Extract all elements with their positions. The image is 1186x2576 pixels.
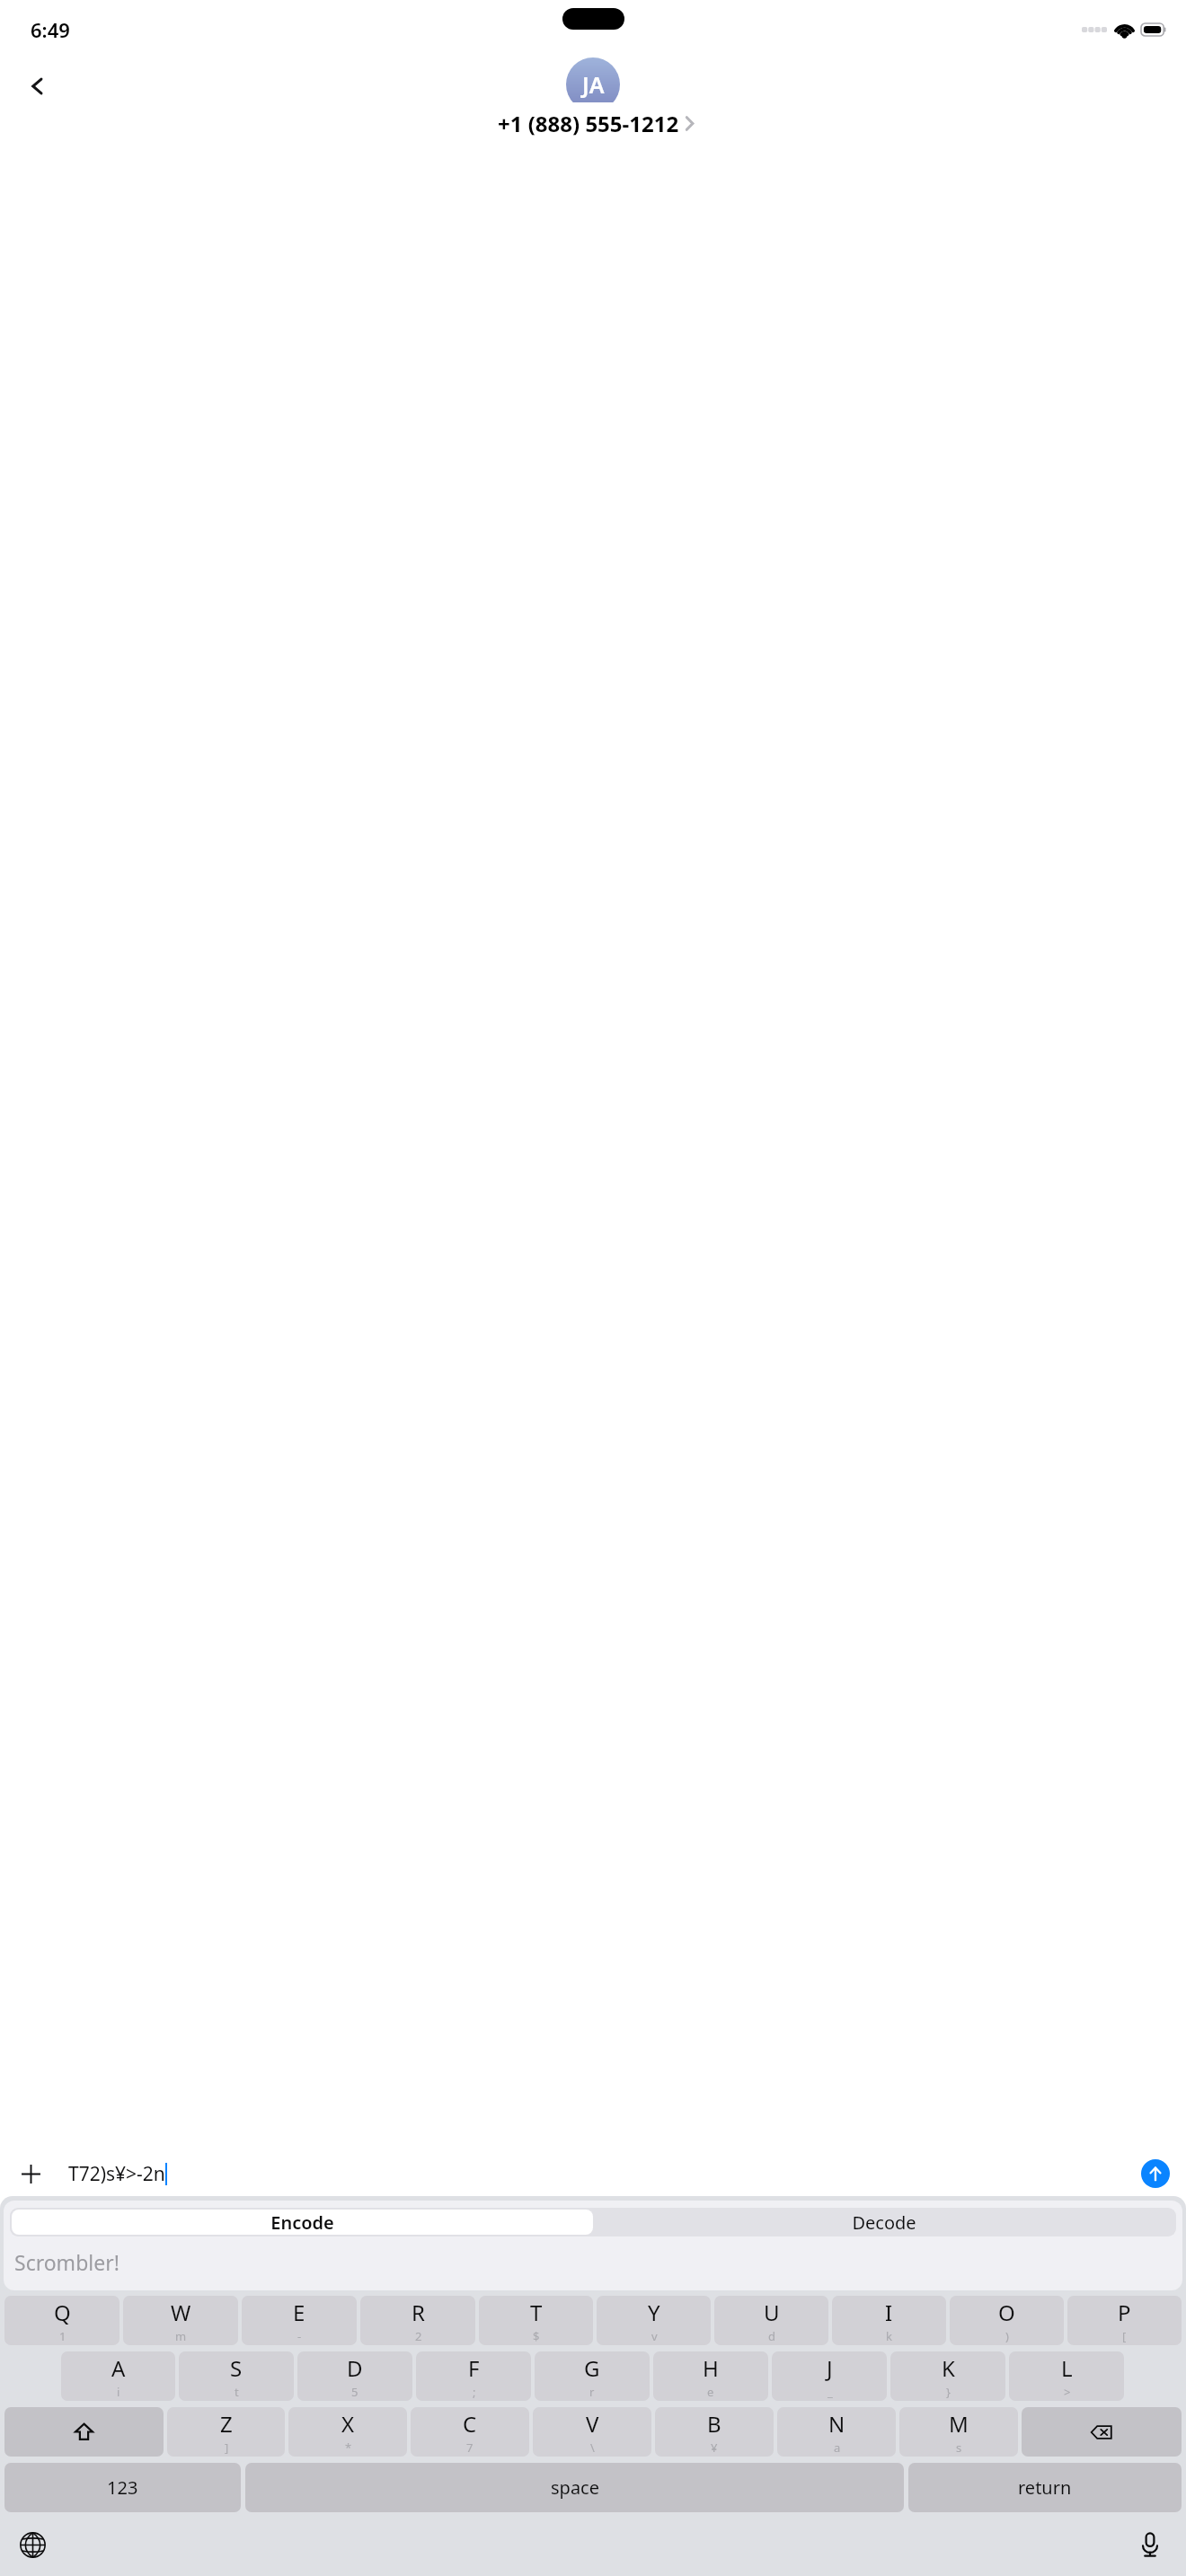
staticText: k bbox=[886, 2328, 892, 2344]
staticText: 6:49 bbox=[31, 16, 70, 43]
button[interactable]: Add attachment bbox=[13, 2156, 49, 2192]
staticText: M bbox=[949, 2409, 969, 2439]
button[interactable]: Back bbox=[16, 65, 59, 108]
button[interactable]: Dictation bbox=[1130, 2525, 1170, 2564]
staticText: Scrombler! bbox=[14, 2248, 119, 2276]
staticText: F bbox=[468, 2353, 480, 2383]
button[interactable]: space bbox=[245, 2463, 904, 2512]
button[interactable]: M bbox=[899, 2407, 1018, 2457]
staticText: ¥ bbox=[711, 2439, 718, 2456]
button[interactable]: R bbox=[360, 2296, 475, 2345]
button[interactable]: P bbox=[1067, 2296, 1182, 2345]
button[interactable]: Z bbox=[167, 2407, 285, 2457]
button[interactable]: O bbox=[950, 2296, 1064, 2345]
button[interactable]: +1 (888) 555-1212 bbox=[478, 102, 708, 146]
staticText: 1 bbox=[59, 2328, 66, 2344]
button[interactable]: Contact avatar bbox=[566, 57, 620, 111]
staticText: Y bbox=[648, 2298, 660, 2327]
staticText: a bbox=[834, 2439, 841, 2456]
button[interactable]: A bbox=[61, 2351, 175, 2401]
staticText: C bbox=[463, 2409, 477, 2439]
staticText: d bbox=[768, 2328, 775, 2344]
staticText: r bbox=[589, 2384, 595, 2400]
staticText: G bbox=[584, 2353, 600, 2383]
staticText: R bbox=[412, 2298, 425, 2327]
staticText: O bbox=[998, 2298, 1015, 2327]
staticText: * bbox=[345, 2439, 352, 2456]
button[interactable]: T bbox=[479, 2296, 593, 2345]
staticText: v bbox=[651, 2328, 658, 2344]
button[interactable]: L bbox=[1009, 2351, 1124, 2401]
staticText: T bbox=[530, 2298, 543, 2327]
staticText: W bbox=[171, 2298, 191, 2327]
button[interactable]: U bbox=[714, 2296, 828, 2345]
button[interactable]: 123 bbox=[4, 2463, 241, 2512]
staticText: ] bbox=[225, 2439, 229, 2456]
staticText: T72)s¥>-2n bbox=[68, 2161, 165, 2187]
staticText: 7 bbox=[466, 2439, 474, 2456]
button[interactable]: I bbox=[832, 2296, 946, 2345]
staticText: Z bbox=[220, 2409, 233, 2439]
staticText: ) bbox=[1005, 2328, 1009, 2344]
button[interactable]: X bbox=[288, 2407, 407, 2457]
staticText: 2 bbox=[415, 2328, 422, 2344]
button[interactable]: K bbox=[890, 2351, 1005, 2401]
staticText: Decode bbox=[852, 2210, 916, 2235]
staticText: m bbox=[175, 2328, 187, 2344]
staticText: N bbox=[828, 2409, 845, 2439]
staticText: $ bbox=[533, 2328, 540, 2344]
staticText: L bbox=[1061, 2353, 1073, 2383]
staticText: } bbox=[946, 2384, 951, 2400]
staticText: B bbox=[707, 2409, 721, 2439]
staticText: 5 bbox=[351, 2384, 358, 2400]
button[interactable]: C bbox=[411, 2407, 529, 2457]
staticText: P bbox=[1118, 2298, 1131, 2327]
staticText: _ bbox=[828, 2384, 833, 2400]
button[interactable]: F bbox=[416, 2351, 531, 2401]
button[interactable]: E bbox=[242, 2296, 357, 2345]
staticText: Encode bbox=[270, 2210, 334, 2235]
staticText: A bbox=[111, 2353, 126, 2383]
staticText: i bbox=[117, 2384, 120, 2400]
staticText: e bbox=[707, 2384, 714, 2400]
button[interactable]: return bbox=[908, 2463, 1182, 2512]
button[interactable]: V bbox=[533, 2407, 651, 2457]
button[interactable]: Decode bbox=[593, 2210, 1174, 2235]
staticText: space bbox=[551, 2475, 599, 2500]
staticText: JA bbox=[582, 69, 605, 100]
staticText: t bbox=[235, 2384, 239, 2400]
button[interactable]: T72)s¥>-2n bbox=[56, 2156, 1173, 2192]
button[interactable]: N bbox=[777, 2407, 896, 2457]
button[interactable]: D bbox=[297, 2351, 412, 2401]
button[interactable]: G bbox=[535, 2351, 650, 2401]
staticText: K bbox=[942, 2353, 955, 2383]
staticText: 123 bbox=[107, 2475, 138, 2500]
button[interactable]: Next keyboard bbox=[13, 2525, 52, 2564]
button[interactable]: J bbox=[772, 2351, 887, 2401]
staticText: > bbox=[1064, 2384, 1071, 2400]
staticText: ; bbox=[473, 2384, 476, 2400]
staticText: V bbox=[586, 2409, 599, 2439]
button[interactable]: Q bbox=[4, 2296, 119, 2345]
staticText: \ bbox=[590, 2439, 595, 2456]
button[interactable]: Backspace bbox=[1022, 2407, 1182, 2457]
staticText: Q bbox=[54, 2298, 71, 2327]
staticText: X bbox=[341, 2409, 355, 2439]
button[interactable]: Y bbox=[597, 2296, 711, 2345]
staticText: return bbox=[1018, 2475, 1072, 2500]
button[interactable]: S bbox=[179, 2351, 294, 2401]
staticText: E bbox=[293, 2298, 305, 2327]
staticText: I bbox=[885, 2298, 893, 2327]
button[interactable]: Shift bbox=[4, 2407, 164, 2457]
staticText: [ bbox=[1122, 2328, 1127, 2344]
button[interactable]: Send bbox=[1141, 2159, 1170, 2188]
staticText: +1 (888) 555-1212 bbox=[498, 109, 679, 138]
staticText: D bbox=[347, 2353, 363, 2383]
staticText: U bbox=[764, 2298, 780, 2327]
staticText: H bbox=[703, 2353, 719, 2383]
button[interactable]: W bbox=[123, 2296, 238, 2345]
button[interactable]: H bbox=[653, 2351, 768, 2401]
staticText: S bbox=[230, 2353, 243, 2383]
button[interactable]: B bbox=[655, 2407, 774, 2457]
button[interactable]: Encode bbox=[12, 2210, 593, 2235]
